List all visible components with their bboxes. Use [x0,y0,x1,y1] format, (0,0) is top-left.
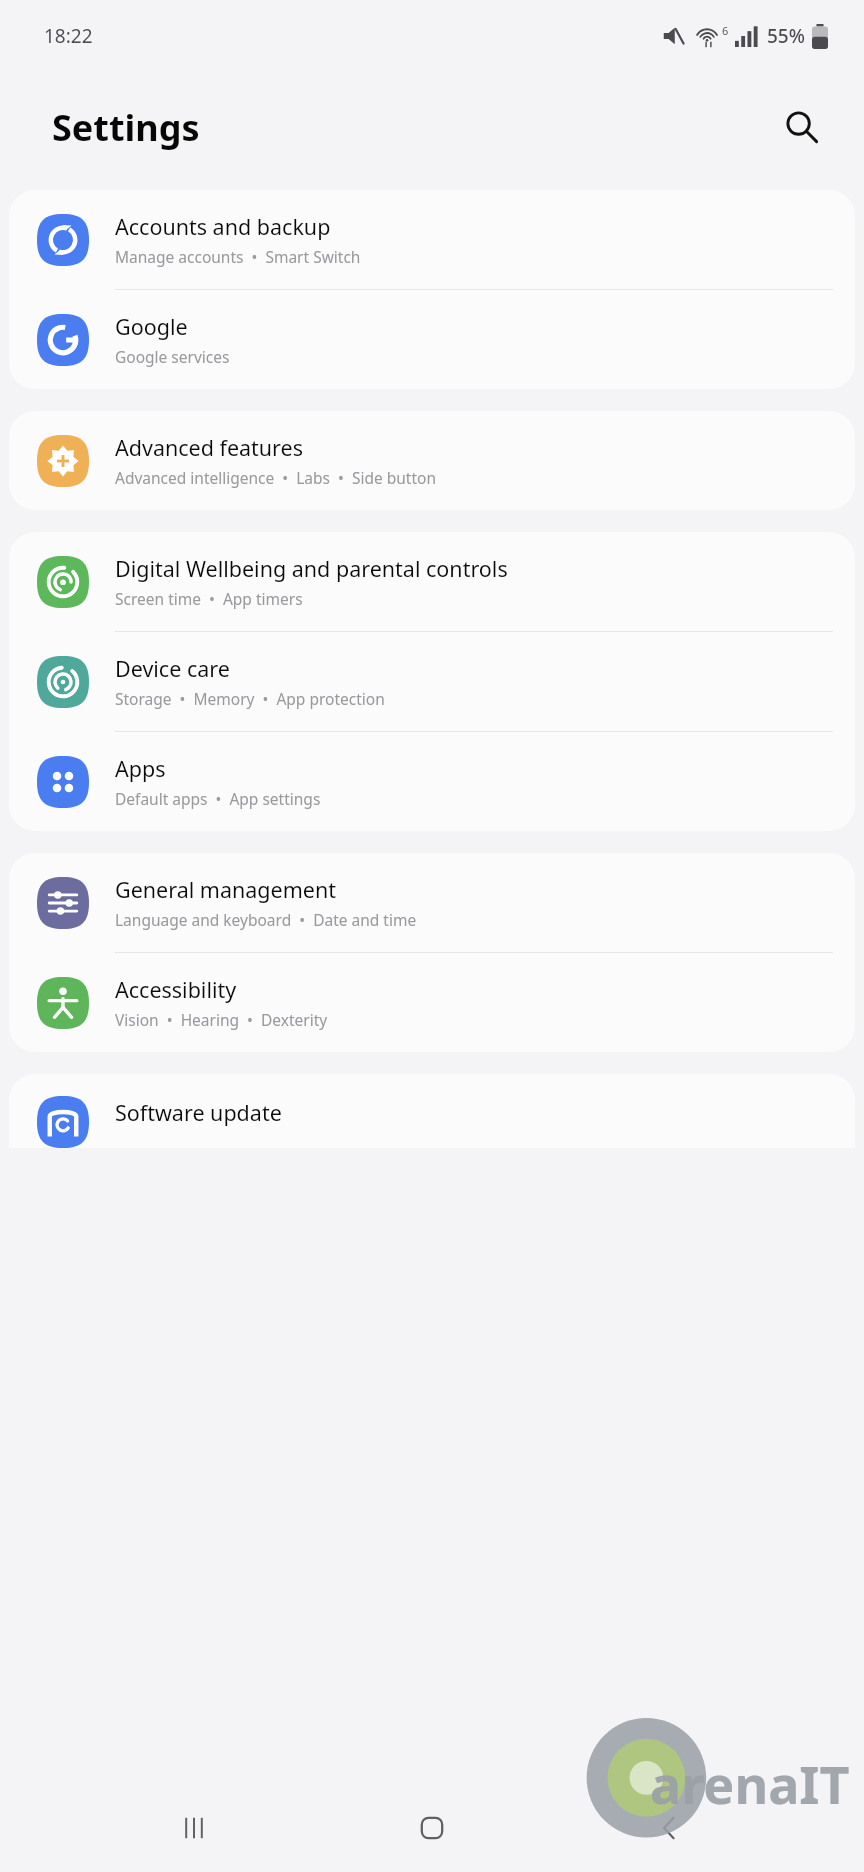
button[interactable]: Device care [9,632,855,731]
staticText: Screen time • App timers [115,588,303,609]
staticText: General management [115,875,336,904]
button[interactable]: Accounts and backup [9,190,855,289]
staticText: Vision • Hearing • Dexterity [115,1009,328,1030]
staticText: arenaIT [650,1748,850,1819]
staticText: Manage accounts • Smart Switch [115,246,361,267]
button[interactable]: Digital Wellbeing and parental controls [9,532,855,631]
staticText: 18:22 [44,23,93,49]
staticText: Accessibility [115,975,237,1004]
staticText: Accounts and backup [115,212,331,241]
button[interactable]: Apps [9,732,855,831]
button[interactable]: Accessibility [9,953,855,1052]
staticText: Advanced features [115,433,303,462]
button[interactable]: Search [776,101,828,153]
staticText: Advanced intelligence • Labs • Side butt… [115,467,437,488]
button[interactable]: Software update [9,1074,855,1148]
button[interactable]: Home [388,1784,476,1872]
button[interactable]: Recent apps [150,1784,238,1872]
staticText: 6 [722,23,729,38]
staticText: Language and keyboard • Date and time [115,909,417,930]
staticText: Storage • Memory • App protection [115,688,385,709]
staticText: Apps [115,754,166,783]
button[interactable]: Google [9,290,855,389]
staticText: Device care [115,654,230,683]
button[interactable]: Advanced features [9,411,855,510]
staticText: Default apps • App settings [115,788,321,809]
staticText: Google services [115,346,230,367]
button[interactable]: Back [626,1784,714,1872]
staticText: Settings [52,103,200,152]
staticText: Software update [115,1098,282,1127]
button[interactable]: General management [9,853,855,952]
staticText: 55% [767,23,805,49]
staticText: Google [115,312,188,341]
staticText: Digital Wellbeing and parental controls [115,554,508,583]
